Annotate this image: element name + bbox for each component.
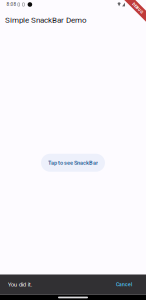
staticText: Tap to see SnackBar	[48, 159, 98, 166]
staticText: Simple SnackBar Demo	[5, 15, 87, 25]
staticText: You did it.	[8, 281, 33, 288]
staticText: 8:08	[7, 2, 17, 7]
staticText: Cancel	[116, 281, 132, 287]
button[interactable]: Tap to see SnackBar	[41, 154, 105, 172]
staticText: DEBUG	[131, 6, 145, 11]
button[interactable]: Cancel	[116, 281, 132, 287]
